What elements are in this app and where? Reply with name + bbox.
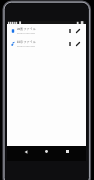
staticText: 2019/11/26 12:04 <box>17 45 35 48</box>
staticText: 録音ファイル <box>17 40 36 44</box>
button[interactable]: Edit <box>75 27 80 35</box>
button[interactable]: Recent apps <box>63 147 72 156</box>
button[interactable]: More options <box>67 27 72 35</box>
button[interactable]: 録音ファイル <box>7 37 86 50</box>
button[interactable]: Home <box>42 147 51 156</box>
staticText: 2019/11/26 12:04 <box>17 32 35 35</box>
button[interactable]: 調査ファイル <box>7 24 86 37</box>
button[interactable]: More options <box>67 40 72 48</box>
staticText: 調査ファイル <box>17 27 36 31</box>
button[interactable]: Back <box>21 147 30 156</box>
button[interactable]: Edit <box>75 40 80 48</box>
